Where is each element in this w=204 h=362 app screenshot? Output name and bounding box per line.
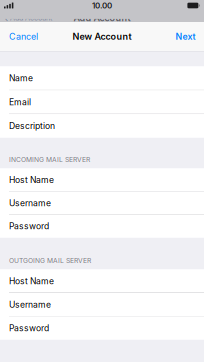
staticText: Host Name [9,276,54,286]
button[interactable]: Password [0,316,204,339]
button[interactable]: Cancel [0,22,47,51]
button[interactable]: Name [0,66,204,90]
button[interactable]: Username [0,192,204,214]
staticText: Description [9,121,55,131]
button[interactable]: Email [0,90,204,114]
staticText: Email [9,97,31,107]
button[interactable]: Password [0,215,204,237]
staticText: Cancel [9,31,38,42]
staticText: Username [9,198,51,208]
staticText: Password [9,221,49,231]
staticText: ‹ [4,12,8,24]
staticText: OUTGOING MAIL SERVER [9,256,91,264]
staticText: 10.00 [92,1,112,10]
staticText: Next [175,31,195,42]
staticText: Host Name [9,175,54,185]
staticText: Add Account [73,12,130,23]
staticText: Password [9,323,49,333]
staticText: INCOMING MAIL SERVER [9,155,90,163]
button[interactable]: Description [0,114,204,137]
button[interactable]: Host Name [0,269,204,292]
staticText: New Account [72,31,131,42]
button[interactable]: Username [0,293,204,316]
staticText: Name [9,73,33,83]
staticText: Username [9,299,51,310]
button[interactable]: Next [167,22,204,51]
staticText: Add Account [10,14,52,22]
button[interactable]: Host Name [0,168,204,191]
